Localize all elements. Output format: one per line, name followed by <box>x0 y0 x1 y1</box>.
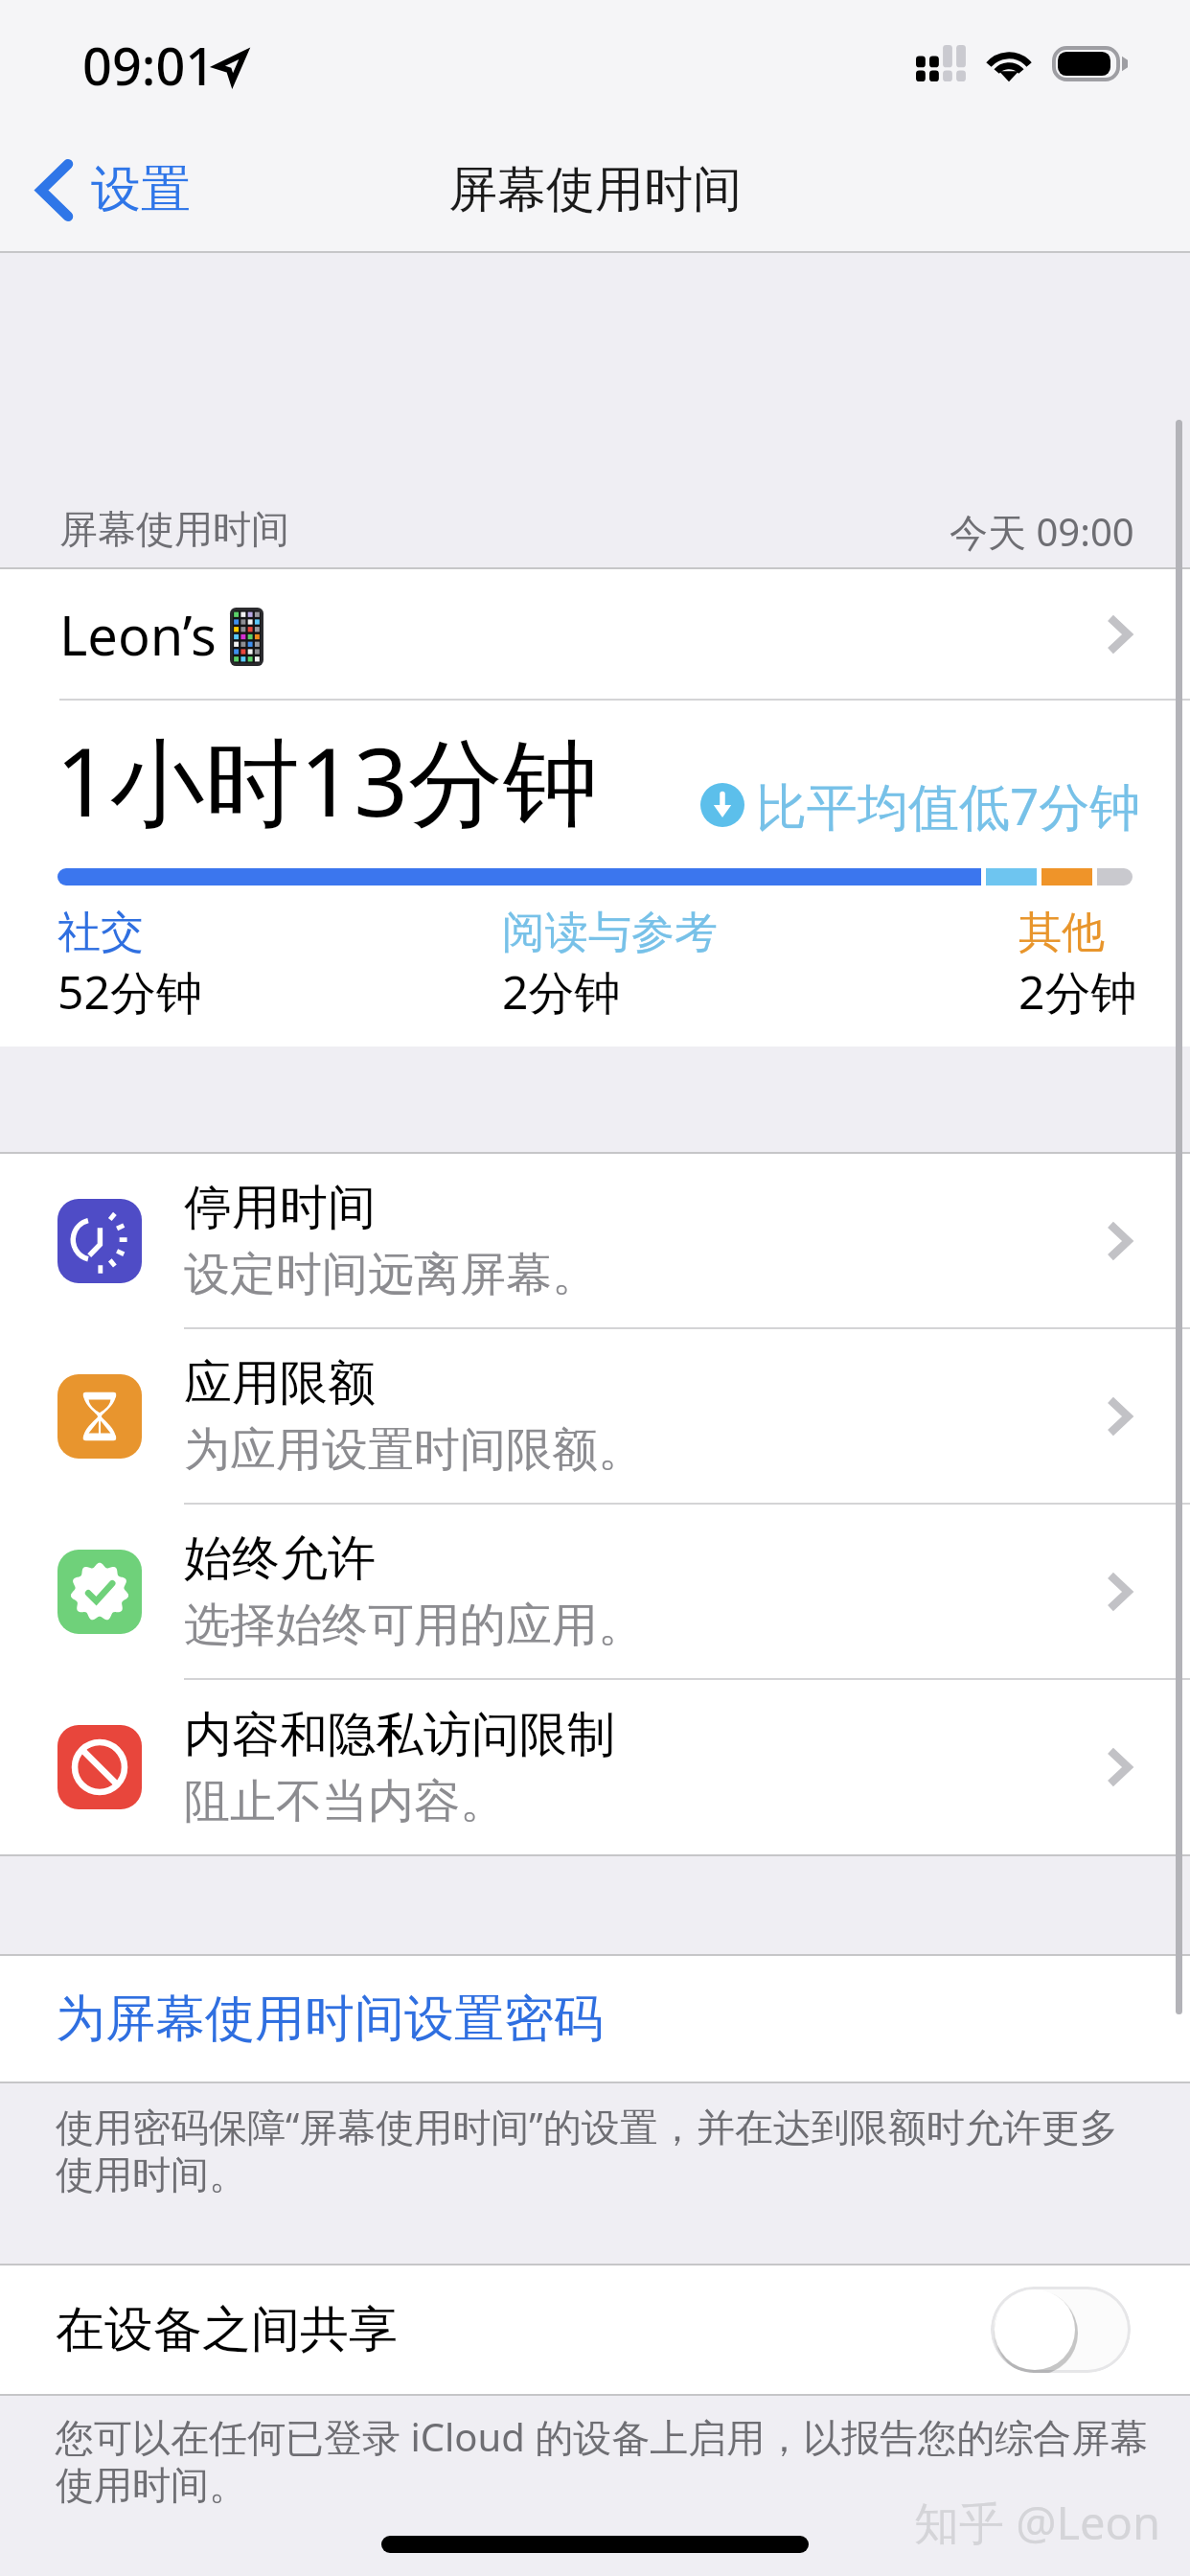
staticText: 您可以在任何已登录 iCloud 的设备上启用，以报告您的综合屏幕使用时间。 <box>56 2410 1156 2509</box>
staticText: 设置 <box>91 158 191 221</box>
staticText: 阅读与参考 <box>502 906 718 960</box>
staticText: 社交 <box>57 906 144 960</box>
staticText: 应用限额 <box>184 1353 376 1414</box>
staticText: 阻止不当内容。 <box>184 1773 506 1830</box>
staticText: 始终允许 <box>184 1529 376 1589</box>
staticText: 设定时间远离屏幕。 <box>184 1246 598 1303</box>
button[interactable]: 设置 <box>0 145 212 235</box>
staticText: 1小时13分钟 <box>56 715 598 844</box>
staticText: Leon’s <box>59 598 217 671</box>
staticText: 2分钟 <box>1018 960 1137 1023</box>
staticText: 知乎 @Leon <box>914 2492 1161 2553</box>
button[interactable]: 始终允许 <box>0 1505 1190 1680</box>
staticText: 为应用设置时间限额。 <box>184 1421 644 1479</box>
staticText: 今天 09:00 <box>950 505 1134 558</box>
staticText: 在设备之间共享 <box>56 2299 398 2360</box>
staticText: 停用时间 <box>184 1178 376 1238</box>
staticText: 屏幕使用时间 <box>448 159 742 220</box>
staticText: 屏幕使用时间 <box>59 505 289 553</box>
staticText: 选择始终可用的应用。 <box>184 1597 644 1654</box>
button[interactable]: 为屏幕使用时间设置密码 <box>0 1956 1190 2081</box>
staticText: 为屏幕使用时间设置密码 <box>56 1988 604 2051</box>
staticText: 比平均值低7分钟 <box>756 770 1141 839</box>
staticText: 内容和隐私访问限制 <box>184 1705 615 1765</box>
staticText: 09:01 <box>82 30 216 101</box>
staticText: 52分钟 <box>57 960 202 1023</box>
button[interactable]: 在设备之间共享 <box>0 2265 1190 2394</box>
button[interactable]: 停用时间 <box>0 1154 1190 1329</box>
staticText: 2分钟 <box>502 960 621 1023</box>
staticText: 使用密码保障“屏幕使用时间”的设置，并在达到限额时允许更多使用时间。 <box>56 2100 1156 2198</box>
button[interactable]: Leon’s <box>0 569 1190 699</box>
staticText: 其他 <box>1018 906 1105 960</box>
button[interactable]: 内容和隐私访问限制 <box>0 1680 1190 1854</box>
button[interactable]: 应用限额 <box>0 1329 1190 1505</box>
button[interactable]: Share across devices toggle, off <box>991 2287 1131 2373</box>
